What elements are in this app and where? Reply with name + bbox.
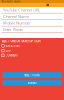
button[interactable]: Menu <box>46 4 49 6</box>
button[interactable]: COMMENT <box>0 53 64 58</box>
staticText: YouTube Subs <box>1 0 20 3</box>
staticText: Channel Name <box>3 14 29 19</box>
staticText: SUBSCRIBE <box>6 44 20 48</box>
staticText: Mobile Number <box>3 20 31 26</box>
button[interactable]: SUBSCRIBE <box>0 44 64 48</box>
staticText: COMMENT <box>6 54 18 57</box>
staticText: YouTube Channel URL <box>3 7 40 13</box>
staticText: SELECT ONE OR MORE OPTION <box>2 39 41 43</box>
button[interactable]: LIKE <box>0 48 64 53</box>
button[interactable]: SUBMIT <box>2 80 61 86</box>
staticText: SUBMIT <box>27 81 36 85</box>
button[interactable]: SELECT VIDEO <box>2 72 61 78</box>
staticText: SELECT VIDEO <box>24 73 40 77</box>
staticText: LIKE <box>6 49 11 52</box>
staticText: Enter Points <box>3 27 23 32</box>
